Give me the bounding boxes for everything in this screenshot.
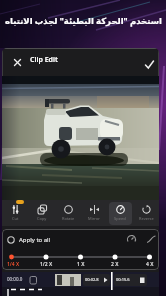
staticText: Rotate	[62, 216, 75, 221]
button[interactable]	[124, 232, 139, 247]
staticText: Clip Edit	[30, 55, 58, 65]
staticText: 00:02.8	[85, 277, 99, 282]
button[interactable]: 2 X	[104, 260, 126, 269]
button[interactable]: Reverse	[133, 200, 159, 226]
staticText: Mirror	[88, 216, 100, 221]
staticText: Speed	[114, 216, 126, 221]
staticText: 2 X	[111, 261, 119, 268]
button[interactable]: Mirror	[81, 200, 107, 226]
staticText: Cut	[12, 216, 19, 221]
button[interactable]: 4 X	[139, 260, 159, 269]
staticText: 00:00.0	[7, 276, 23, 282]
staticText: Apply to all	[19, 236, 51, 244]
staticText: Reverse	[139, 216, 154, 221]
button[interactable]: Apply to all	[7, 232, 51, 247]
staticText: 1/2 X	[40, 261, 53, 268]
staticText: 4 X	[146, 261, 154, 268]
staticText: 00:15.6	[116, 277, 130, 282]
button[interactable]	[139, 53, 159, 75]
button[interactable]: Rotate	[55, 200, 81, 226]
button[interactable]: 1/4 X	[2, 260, 24, 269]
button[interactable]: 1/2 X	[35, 260, 57, 269]
staticText: Copy	[37, 216, 47, 221]
button[interactable]	[144, 232, 159, 247]
button[interactable]: Speed	[107, 200, 133, 226]
button[interactable]: 1 X	[70, 260, 92, 269]
button[interactable]	[7, 51, 27, 73]
button[interactable]: Copy	[29, 200, 55, 226]
staticText: 1/4 X	[7, 261, 20, 268]
staticText: 1 X	[77, 261, 85, 268]
staticText: استخدم "الحركة البطيئة" لجذب الانتباه	[5, 15, 162, 27]
button[interactable]: Cut	[2, 200, 29, 226]
